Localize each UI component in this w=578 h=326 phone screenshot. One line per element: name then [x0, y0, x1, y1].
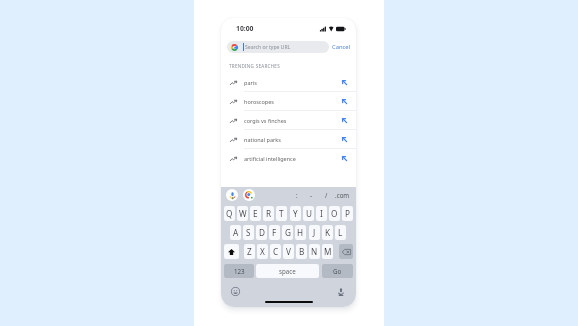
button[interactable]: corgis vs finches [221, 111, 356, 130]
staticText: : [296, 191, 298, 199]
staticText: 10:00 [236, 24, 254, 33]
button[interactable]: artificial intelligence [221, 149, 356, 168]
staticText: L [338, 227, 343, 238]
button[interactable]: T [276, 206, 287, 221]
button[interactable]: G [282, 225, 293, 240]
staticText: R [266, 208, 272, 219]
staticText: K [325, 227, 331, 238]
button[interactable]: U [303, 206, 314, 221]
staticText: paris [244, 79, 257, 86]
staticText: TRENDING SEARCHES [229, 63, 280, 69]
staticText: Search or type URL [245, 44, 291, 51]
staticText: V [286, 246, 291, 257]
staticText: F [272, 227, 277, 238]
button[interactable]: Backspace [339, 244, 353, 259]
staticText: D [259, 227, 265, 238]
button[interactable]: P [342, 206, 353, 221]
button[interactable]: I [316, 206, 327, 221]
staticText: O [331, 208, 338, 219]
staticText: Q [226, 208, 233, 219]
button[interactable]: Voice input [338, 288, 344, 296]
button[interactable]: E [250, 206, 261, 221]
button[interactable]: space [256, 264, 319, 278]
button[interactable]: L [335, 225, 346, 240]
button[interactable]: M [322, 244, 333, 259]
button[interactable]: J [309, 225, 320, 240]
staticText: Go [333, 267, 342, 275]
button[interactable]: N [309, 244, 320, 259]
staticText: A [233, 227, 239, 238]
staticText: W [239, 208, 247, 219]
staticText: J [313, 227, 316, 238]
staticText: Y [293, 208, 298, 219]
button[interactable]: Search or type URL [227, 41, 329, 53]
staticText: X [260, 246, 265, 257]
button[interactable]: national parks [221, 130, 356, 149]
staticText: artificial intelligence [244, 155, 296, 162]
button[interactable]: Emoji [231, 287, 240, 296]
staticText: corgis vs finches [244, 117, 287, 124]
button[interactable]: S [243, 225, 254, 240]
button[interactable]: - [303, 189, 319, 201]
staticText: E [253, 208, 258, 219]
button[interactable]: paris [221, 73, 356, 92]
button[interactable]: Voice search [226, 189, 238, 201]
staticText: I [320, 208, 323, 219]
button[interactable]: / [318, 189, 334, 201]
button[interactable]: H [295, 225, 306, 240]
button[interactable]: V [283, 244, 294, 259]
staticText: 123 [234, 267, 245, 275]
button[interactable]: K [322, 225, 333, 240]
button[interactable]: W [237, 206, 248, 221]
staticText: C [273, 246, 279, 257]
staticText: horoscopes [244, 98, 274, 105]
button[interactable]: horoscopes [221, 92, 356, 111]
staticText: T [279, 208, 284, 219]
staticText: H [297, 227, 304, 238]
staticText: .com [335, 191, 350, 199]
button[interactable]: Y [290, 206, 301, 221]
staticText: space [279, 267, 296, 275]
staticText: G [285, 227, 291, 238]
staticText: Cancel [332, 43, 351, 51]
button[interactable]: C [270, 244, 281, 259]
button[interactable]: X [257, 244, 268, 259]
button[interactable]: Z [244, 244, 255, 259]
staticText: Z [247, 246, 252, 257]
button[interactable]: A [230, 225, 241, 240]
button[interactable]: Cancel [330, 41, 352, 53]
staticText: S [246, 227, 251, 238]
button[interactable]: D [256, 225, 267, 240]
button[interactable]: .com [334, 189, 350, 201]
button[interactable]: Go [322, 264, 353, 278]
staticText: / [325, 191, 328, 199]
button[interactable]: R [263, 206, 274, 221]
staticText: national parks [244, 136, 281, 143]
button[interactable]: Q [224, 206, 235, 221]
button[interactable]: F [269, 225, 280, 240]
button[interactable]: Shift [224, 244, 239, 259]
staticText: M [324, 246, 332, 257]
button[interactable]: B [296, 244, 307, 259]
button[interactable]: Google Lens [243, 189, 255, 201]
button[interactable]: : [289, 189, 305, 201]
staticText: B [299, 246, 305, 257]
staticText: N [311, 246, 318, 257]
button[interactable]: 123 [224, 264, 254, 278]
staticText: - [310, 191, 312, 199]
staticText: P [345, 208, 350, 219]
staticText: U [306, 208, 312, 219]
button[interactable]: O [329, 206, 340, 221]
